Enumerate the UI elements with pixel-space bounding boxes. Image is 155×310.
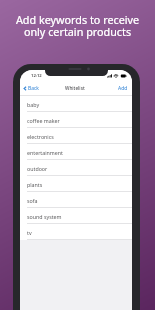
button[interactable]: sound system (20, 208, 132, 224)
button[interactable]: baby (20, 96, 132, 112)
staticText: plants (27, 181, 43, 188)
staticText: outdoor (27, 165, 48, 172)
button[interactable]: Back (23, 85, 39, 92)
staticText: coffee maker (27, 117, 60, 124)
button[interactable]: entertainment (20, 144, 132, 160)
button[interactable]: outdoor (20, 160, 132, 176)
button[interactable]: coffee maker (20, 112, 132, 128)
staticText: Back (28, 85, 39, 92)
staticText: baby (27, 101, 40, 108)
button[interactable]: tv (20, 224, 132, 240)
button[interactable]: plants (20, 176, 132, 192)
staticText: entertainment (27, 149, 63, 156)
staticText: electronics (27, 133, 54, 140)
button[interactable]: sofa (20, 192, 132, 208)
staticText: sofa (27, 197, 38, 204)
button[interactable]: Add (118, 85, 132, 92)
staticText: Whitelist (65, 85, 85, 91)
staticText: 12:12 (31, 73, 42, 79)
staticText: tv (27, 229, 32, 236)
button[interactable]: electronics (20, 128, 132, 144)
staticText: sound system (27, 213, 62, 220)
staticText: Add keywords to receive only certain pro… (5, 12, 150, 40)
